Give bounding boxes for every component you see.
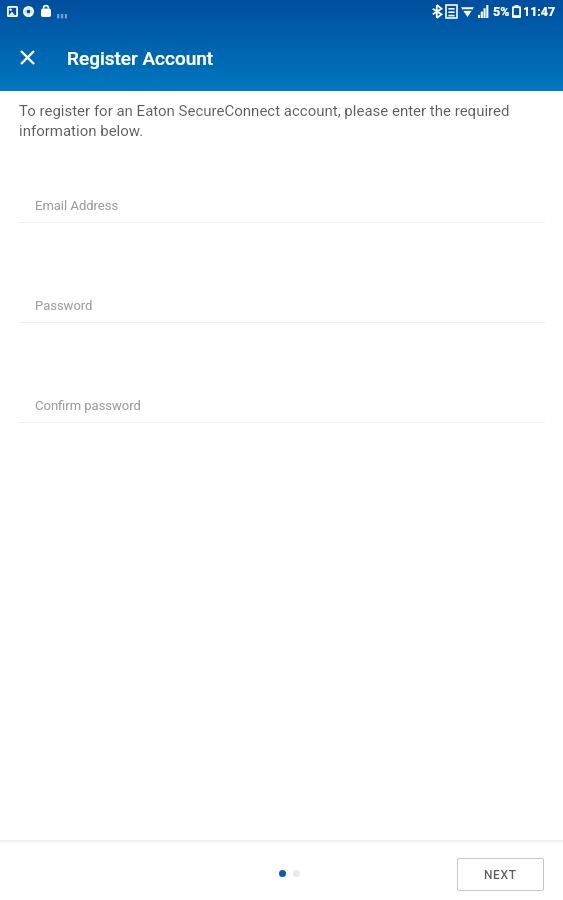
button[interactable]: Password — [0, 283, 563, 338]
button[interactable]: Email Address — [0, 183, 563, 238]
staticText: Email Address — [35, 198, 119, 213]
button[interactable]: Close — [9, 39, 45, 75]
staticText: NEXT — [484, 868, 517, 882]
staticText: To register for an Eaton SecureConnect a… — [19, 102, 544, 139]
staticText: 11:47 — [523, 4, 556, 19]
button[interactable]: NEXT — [457, 858, 544, 891]
staticText: Register Account — [67, 47, 214, 69]
staticText: Password — [35, 298, 93, 313]
staticText: Confirm password — [35, 398, 141, 413]
other: Page 1 of 2 — [279, 870, 286, 877]
button[interactable]: Confirm password — [0, 383, 563, 438]
staticText: 5% — [493, 4, 510, 19]
